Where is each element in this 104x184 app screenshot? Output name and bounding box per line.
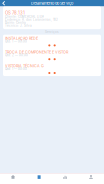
staticText: Cliente: COMERCIAL LTDA xyxy=(5,15,44,18)
button[interactable]: Profile xyxy=(78,174,104,184)
staticText: Detalhamento do Serviço xyxy=(31,1,73,6)
staticText: Endereço: R. das Laranjeiras, 182 xyxy=(5,18,58,21)
button[interactable]: TROCA DE COMPONENTE E VISTOR xyxy=(3,48,101,62)
staticText: Serviços xyxy=(45,30,59,34)
button[interactable]: VISTORIA TÉCNICA G xyxy=(3,62,101,76)
staticText: Qtd: 2 — 00:00 xyxy=(5,53,28,57)
button[interactable]: Back xyxy=(0,0,7,6)
staticText: Qtd: 1 — 00:00 xyxy=(5,40,27,43)
button[interactable]: Orders xyxy=(26,174,52,184)
staticText: INSTALAÇÃO REDE xyxy=(5,36,38,40)
staticText: VISTORIA TÉCNICA G xyxy=(5,64,44,68)
button[interactable]: Reports xyxy=(52,174,78,184)
staticText: Técnico: J. Silva xyxy=(5,24,32,27)
staticText: OS 78.131 xyxy=(5,10,25,16)
staticText: Qtd: 1 — 00:00 xyxy=(5,67,27,71)
button[interactable]: INSTALAÇÃO REDE xyxy=(3,35,101,48)
button[interactable]: Home xyxy=(0,174,26,184)
staticText: Bairro: Centro xyxy=(5,21,26,24)
staticText: TROCA DE COMPONENTE E VISTOR xyxy=(5,50,68,54)
